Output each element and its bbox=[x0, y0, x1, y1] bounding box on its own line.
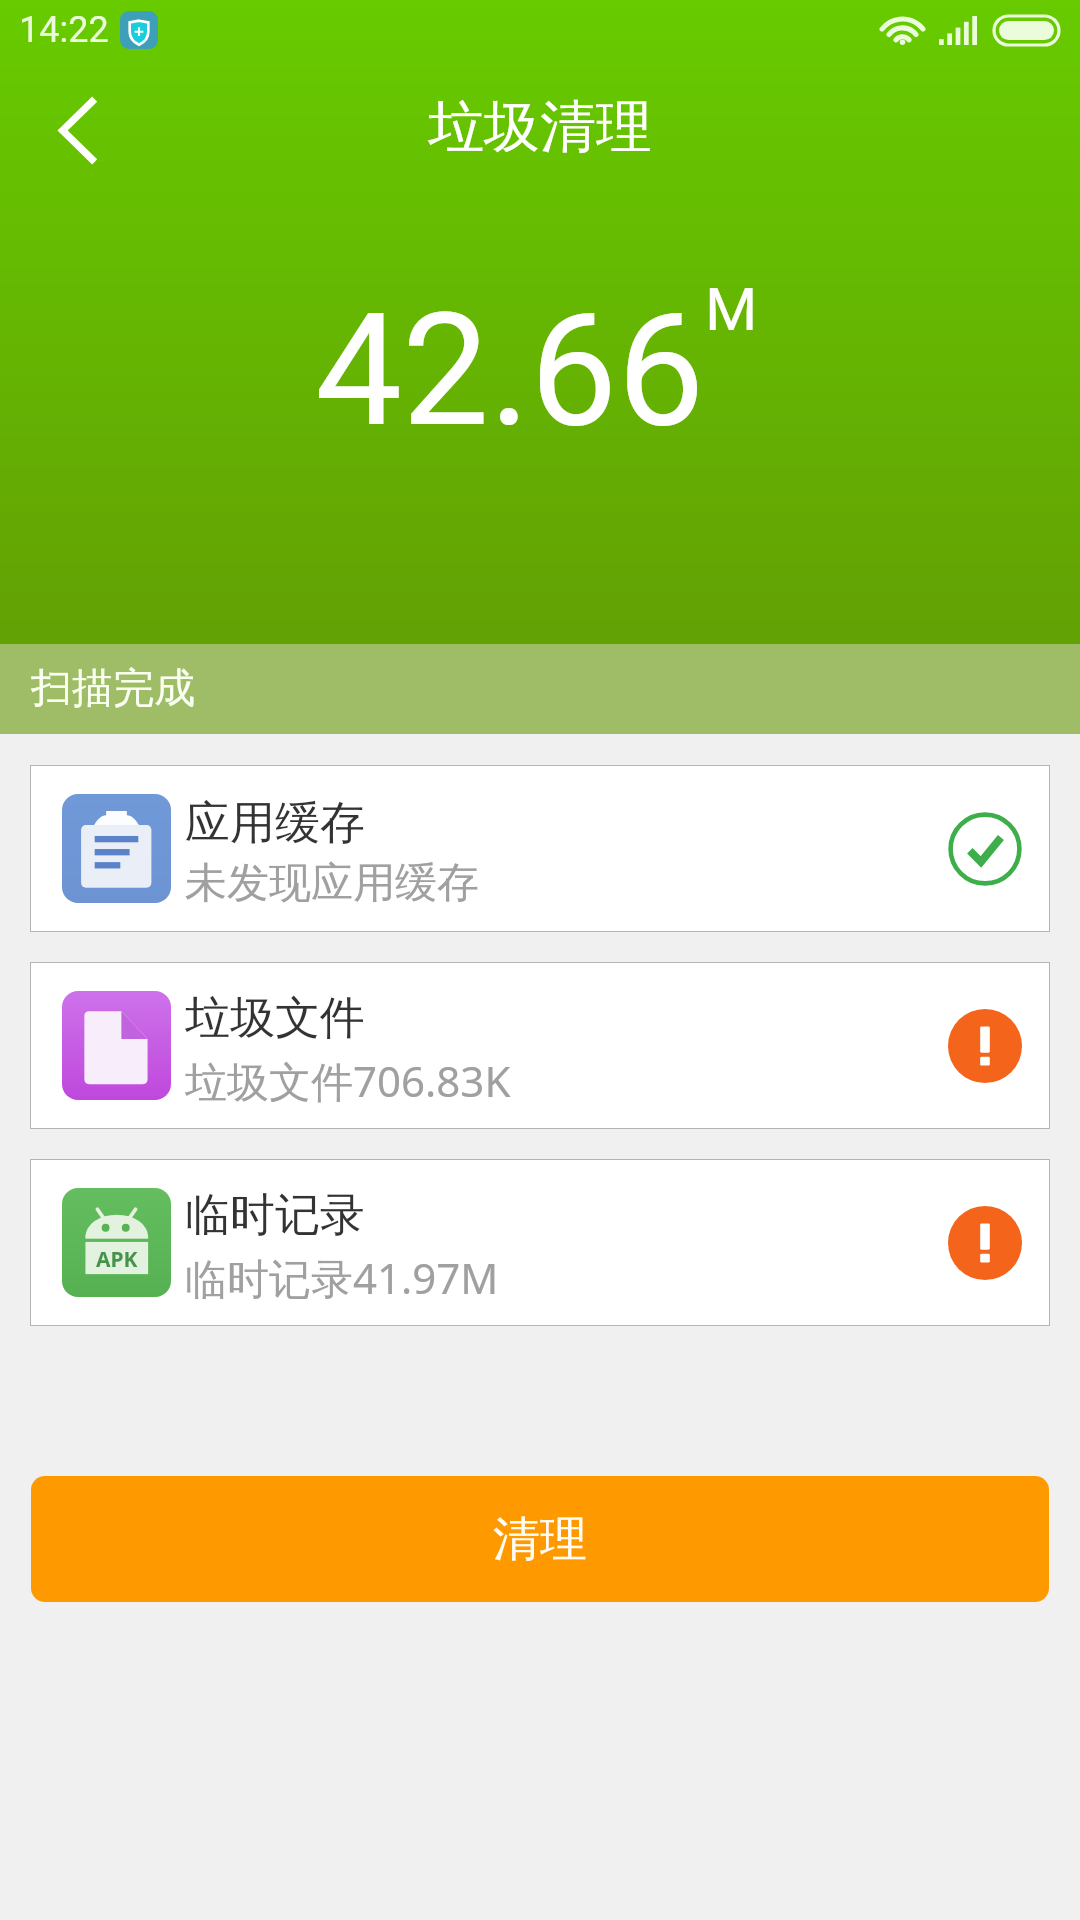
button[interactable]: 应用缓存 bbox=[30, 765, 1050, 932]
staticText: 垃圾文件706.83K bbox=[185, 1052, 511, 1109]
staticText: APK bbox=[96, 1245, 138, 1274]
staticText: 临时记录 bbox=[185, 1187, 365, 1244]
staticText: 清理 bbox=[493, 1510, 587, 1569]
staticText: 垃圾文件 bbox=[185, 990, 365, 1047]
staticText: 临时记录41.97M bbox=[185, 1249, 499, 1306]
button[interactable]: 清理 bbox=[31, 1476, 1049, 1602]
button[interactable]: 垃圾文件 bbox=[30, 962, 1050, 1129]
button[interactable]: APK bbox=[30, 1159, 1050, 1326]
staticText: 未发现应用缓存 bbox=[185, 857, 479, 910]
button[interactable]: Back bbox=[23, 75, 131, 185]
staticText: 垃圾清理 bbox=[428, 92, 652, 163]
staticText: 14:22 bbox=[19, 9, 109, 51]
staticText: 应用缓存 bbox=[185, 795, 365, 852]
staticText: M bbox=[705, 274, 758, 344]
staticText: 42.66 bbox=[315, 280, 705, 462]
staticText: 扫描完成 bbox=[31, 663, 195, 715]
